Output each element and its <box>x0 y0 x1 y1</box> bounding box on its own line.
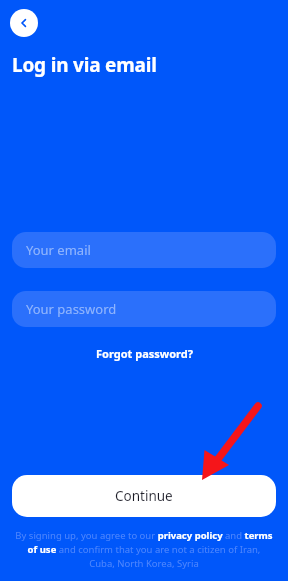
staticText: Your password <box>26 300 117 318</box>
button[interactable]: Forgot password? <box>90 344 199 363</box>
button[interactable]: Back <box>10 9 38 37</box>
staticText: Your email <box>26 241 91 259</box>
staticText: Log in via email <box>12 52 157 78</box>
button[interactable]: Your email <box>12 232 276 268</box>
staticText: Forgot password? <box>96 346 193 361</box>
button[interactable]: Continue <box>12 475 276 517</box>
staticText: By signing up, you agree to our privacy … <box>14 529 274 570</box>
staticText: Continue <box>115 487 173 505</box>
button[interactable]: Your password <box>12 291 276 327</box>
